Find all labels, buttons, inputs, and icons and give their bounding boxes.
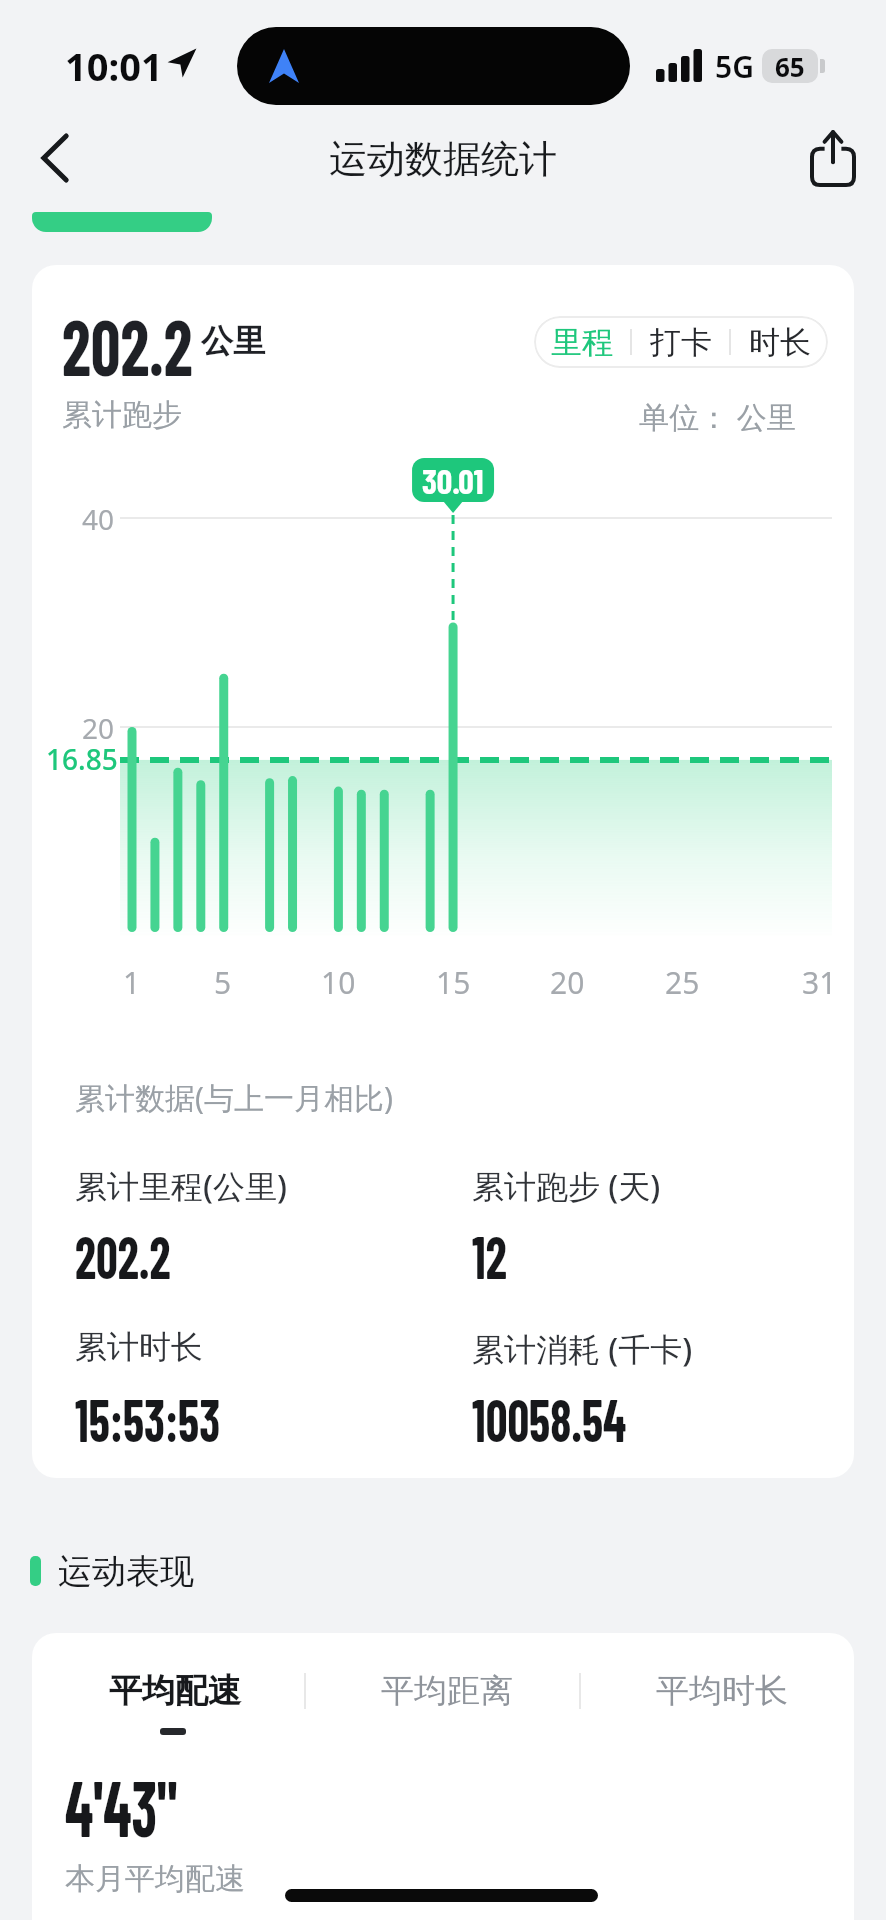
button[interactable]: 里程 — [534, 316, 630, 368]
staticText: 30.01 — [422, 460, 484, 501]
staticText: 20 — [550, 962, 585, 998]
staticText: 打卡 — [650, 323, 712, 362]
staticText: 202.2 — [75, 1219, 171, 1291]
staticText: 里程 — [551, 323, 613, 362]
button[interactable] — [32, 212, 212, 232]
staticText: 4'43" — [65, 1759, 177, 1851]
button[interactable]: 时长 — [731, 316, 828, 368]
staticText: 累计里程(公里) — [75, 1164, 287, 1204]
staticText: 202.2 — [62, 298, 193, 390]
staticText: 16.85 — [46, 740, 118, 776]
staticText: 1 — [123, 962, 141, 998]
button[interactable]: 打卡 — [632, 316, 729, 368]
button[interactable]: 平均时长 — [32, 1633, 192, 1675]
staticText: 65 — [775, 49, 805, 83]
staticText: 15 — [436, 962, 471, 998]
button[interactable]: 平均配速 — [32, 1633, 192, 1675]
staticText: 公里 — [201, 321, 265, 361]
staticText: 15:53:53 — [75, 1382, 221, 1454]
staticText: 本月平均配速 — [65, 1860, 245, 1898]
staticText: 累计跑步 (天) — [472, 1164, 661, 1204]
staticText: 平均距离 — [381, 1670, 513, 1712]
staticText: 10058.54 — [472, 1382, 626, 1454]
button[interactable]: 平均距离 — [32, 1633, 192, 1675]
staticText: 20 — [82, 709, 115, 745]
staticText: 平均配速 — [109, 1670, 241, 1712]
staticText: 单位： 公里 — [639, 396, 797, 432]
staticText: 25 — [665, 962, 700, 998]
staticText: 5 — [214, 962, 232, 998]
staticText: 运动数据统计 — [329, 135, 557, 183]
staticText: 5G — [715, 46, 754, 82]
staticText: 累计跑步 — [62, 396, 182, 432]
staticText: 累计消耗 (千卡) — [472, 1327, 693, 1367]
staticText: 时长 — [749, 323, 811, 362]
staticText: 累计数据(与上一月相比) — [75, 1077, 393, 1117]
staticText: 运动表现 — [58, 1550, 194, 1590]
staticText: 31 — [802, 962, 837, 998]
staticText: 10:01 — [65, 40, 163, 88]
button[interactable] — [20, 122, 90, 194]
staticText: 40 — [82, 500, 115, 536]
button[interactable] — [798, 122, 868, 194]
staticText: 12 — [472, 1219, 507, 1291]
staticText: 累计时长 — [75, 1327, 203, 1367]
staticText: 平均时长 — [656, 1670, 788, 1712]
staticText: 10 — [321, 962, 356, 998]
